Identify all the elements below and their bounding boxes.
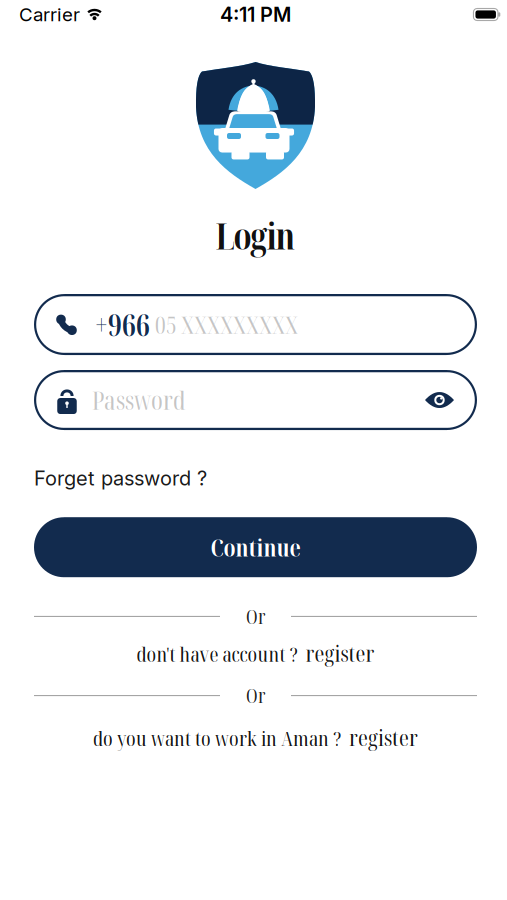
button[interactable]: Show password xyxy=(425,390,454,409)
button[interactable]: register xyxy=(305,638,374,668)
button[interactable]: Password xyxy=(34,370,477,430)
staticText: 4:11 PM xyxy=(220,2,291,27)
staticText: 05 XXXXXXXXX xyxy=(155,308,298,341)
staticText: register xyxy=(305,638,374,668)
staticText: +966 xyxy=(95,304,150,345)
staticText: do you want to work in Aman ? xyxy=(93,724,342,752)
staticText: Login xyxy=(215,211,295,260)
button[interactable]: register xyxy=(349,722,418,753)
button[interactable]: Phone number xyxy=(34,294,477,355)
button[interactable]: Forget password ? xyxy=(34,466,207,490)
staticText: Or xyxy=(246,603,265,629)
staticText: register xyxy=(349,722,418,753)
staticText: don't have account ? xyxy=(136,640,298,668)
staticText: Carrier xyxy=(19,3,80,26)
button[interactable]: Continue xyxy=(34,517,477,577)
staticText: Or xyxy=(246,682,265,709)
staticText: Password xyxy=(92,383,186,417)
staticText: Continue xyxy=(210,531,300,564)
staticText: Forget password ? xyxy=(34,466,207,490)
